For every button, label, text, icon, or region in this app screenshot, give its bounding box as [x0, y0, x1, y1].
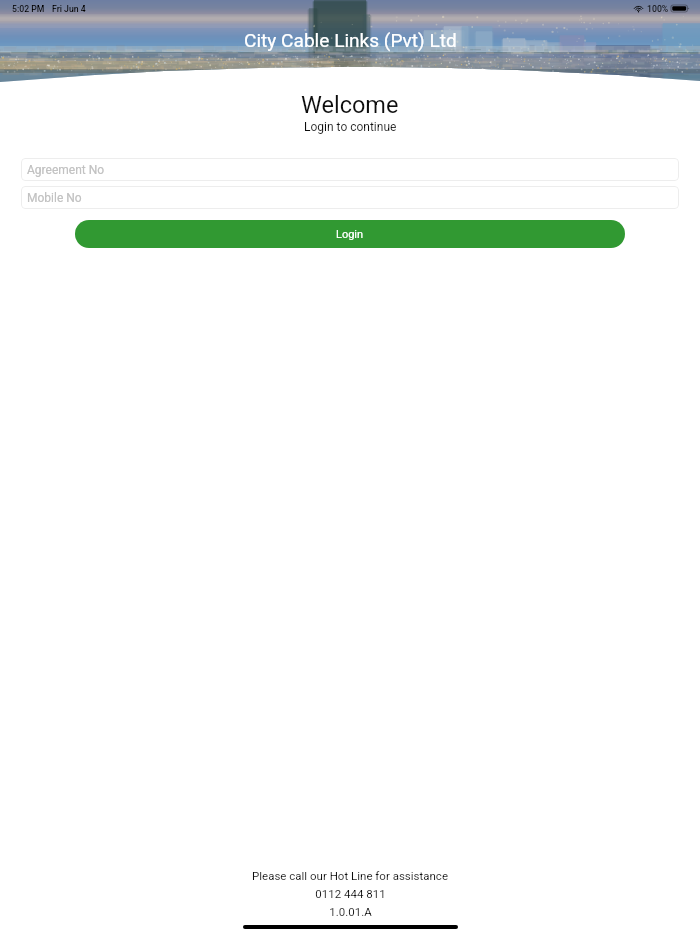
other: Battery full [671, 5, 689, 12]
staticText: City Cable Links (Pvt) Ltd [244, 29, 457, 51]
button[interactable]: Agreement No [21, 158, 679, 181]
staticText: 5:02 PM [12, 4, 45, 14]
staticText: Mobile No [27, 191, 82, 205]
staticText: Please call our Hot Line for assistance [252, 869, 448, 882]
staticText: 1.0.01.A [329, 905, 372, 918]
button[interactable]: 0112 444 811 [315, 887, 386, 900]
other: City skyline banner [0, 0, 700, 90]
button[interactable]: Login [75, 220, 625, 248]
staticText: Welcome [301, 91, 399, 119]
staticText: Login [336, 228, 364, 241]
staticText: Agreement No [27, 163, 105, 177]
other: Wi-Fi [634, 6, 643, 12]
staticText: Fri Jun 4 [52, 4, 86, 14]
staticText: 100% [647, 4, 669, 14]
button[interactable]: Mobile No [21, 186, 679, 209]
staticText: Login to continue [304, 120, 397, 134]
